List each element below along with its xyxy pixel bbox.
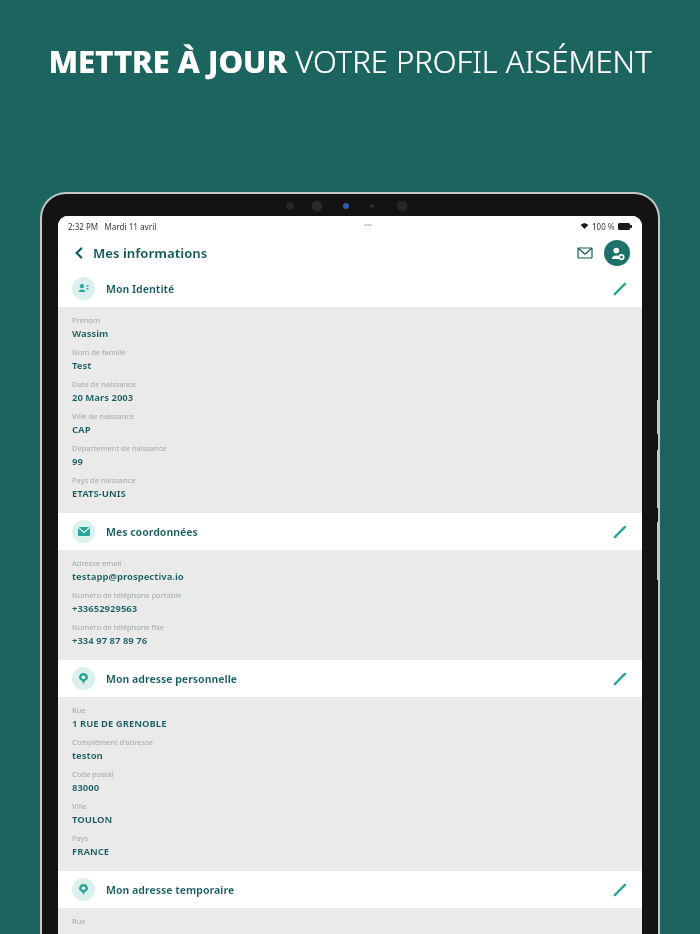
staticText: Ville (72, 801, 87, 811)
button[interactable]: Back (72, 244, 208, 262)
staticText: 20 Mars 2003 (72, 391, 134, 404)
button[interactable]: Edit Mon Identité (608, 278, 630, 300)
button[interactable]: Mon adresse temporaire (58, 871, 642, 908)
staticText: Pays de naissance (72, 475, 136, 485)
staticText: Mon adresse personnelle (106, 672, 238, 686)
button[interactable]: Messages (574, 242, 596, 264)
staticText: ••• (364, 221, 372, 231)
staticText: Mon adresse temporaire (106, 883, 235, 897)
button[interactable]: Mon Identité (58, 270, 642, 307)
staticText: testapp@prospectiva.io (72, 570, 184, 583)
staticText: Rue (72, 705, 86, 715)
staticText: FRANCE (72, 845, 110, 858)
staticText: Code postal (72, 769, 114, 779)
button[interactable]: Edit Mon adresse temporaire (608, 879, 630, 901)
button[interactable]: Edit Mon adresse personnelle (608, 668, 630, 690)
staticText: Adresse email (72, 558, 122, 568)
staticText: Département de naissance (72, 443, 167, 453)
staticText: 2:32 PM Mardi 11 avril (68, 221, 157, 232)
staticText: Mes informations (93, 244, 208, 262)
staticText: +33652929563 (72, 602, 138, 615)
staticText: Complément d'adresse (72, 737, 154, 747)
staticText: teston (72, 749, 103, 762)
staticText: METTRE À JOUR VOTRE PROFIL AISÉMENT (48, 40, 652, 82)
staticText: Mon Identité (106, 282, 175, 296)
button[interactable]: Edit Mes coordonnées (608, 521, 630, 543)
staticText: CAP (72, 423, 91, 436)
staticText: Rue (72, 916, 86, 925)
staticText: 100 % (592, 221, 615, 232)
button[interactable]: Profile settings (604, 240, 630, 266)
staticText: 99 (72, 455, 83, 468)
staticText: Prénom (72, 315, 100, 325)
staticText: 83000 (72, 781, 100, 794)
staticText: +334 97 87 89 76 (72, 634, 148, 647)
staticText: Test (72, 359, 92, 372)
staticText: Numéro de téléphone portable (72, 590, 182, 600)
other: Back (72, 246, 86, 260)
staticText: Ville de naissance (72, 411, 134, 421)
staticText: ETATS-UNIS (72, 487, 126, 500)
staticText: Pays (72, 833, 89, 843)
button[interactable]: Mon adresse personnelle (58, 660, 642, 697)
button[interactable]: Mes coordonnées (58, 513, 642, 550)
staticText: Nom de famille (72, 347, 126, 357)
staticText: 1 RUE DE GRENOBLE (72, 717, 167, 730)
staticText: Wassim (72, 327, 109, 340)
staticText: Numéro de téléphone fixe (72, 622, 165, 632)
staticText: Date de naissance (72, 379, 136, 389)
staticText: TOULON (72, 813, 113, 826)
staticText: Mes coordonnées (106, 525, 198, 539)
